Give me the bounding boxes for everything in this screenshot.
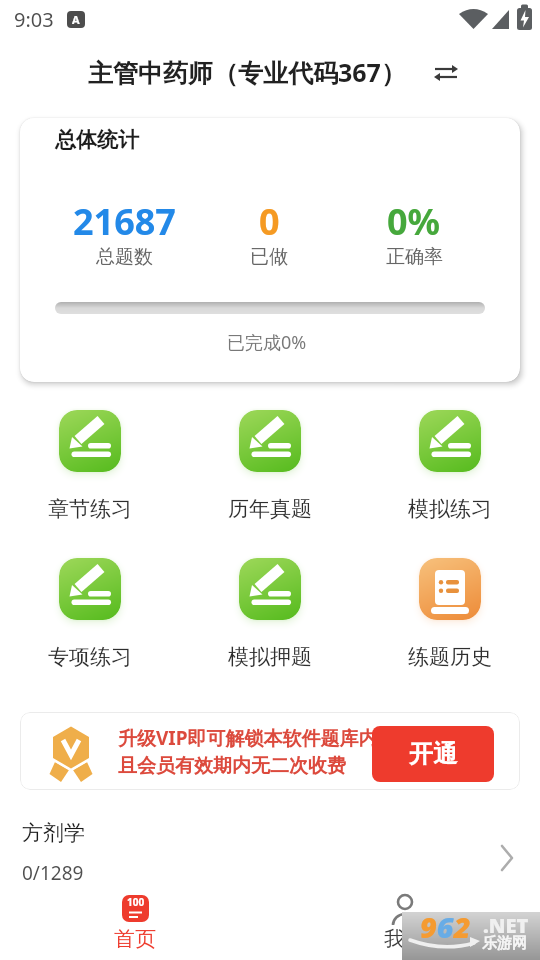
staticText: 962	[420, 907, 471, 946]
button[interactable]: 练题历史	[388, 558, 512, 670]
staticText: 0%	[387, 197, 441, 246]
staticText: 总题数	[96, 245, 153, 269]
staticText: 正确率	[386, 245, 443, 269]
button[interactable]: 模拟押题	[208, 558, 332, 670]
staticText: 且会员有效期内无二次收费	[118, 754, 346, 778]
staticText: 历年真题	[228, 496, 312, 522]
staticText: .NET	[483, 912, 529, 939]
button[interactable]	[0, 808, 540, 890]
button[interactable]: 我的	[365, 888, 445, 960]
staticText: 乐游网	[482, 934, 527, 953]
staticText: 21687	[73, 197, 176, 246]
staticText: 开通	[409, 739, 457, 769]
button[interactable]: 历年真题	[208, 410, 332, 522]
button[interactable]: 100	[95, 888, 175, 960]
button[interactable]: 开通	[372, 726, 494, 782]
staticText: 已做	[250, 245, 288, 269]
staticText: 总体统计	[55, 127, 139, 153]
button[interactable]: 章节练习	[28, 410, 152, 522]
staticText: 章节练习	[48, 496, 132, 522]
button[interactable]: 模拟练习	[388, 410, 512, 522]
staticText: A	[72, 12, 80, 27]
staticText: 专项练习	[48, 644, 132, 670]
button[interactable]	[20, 712, 520, 790]
staticText: 模拟练习	[408, 496, 492, 522]
staticText: 主管中药师（专业代码367）	[88, 55, 406, 89]
staticText: 已完成0%	[227, 330, 307, 355]
staticText: 练题历史	[408, 644, 492, 670]
staticText: 升级VIP即可解锁本软件题库内容	[118, 725, 397, 751]
button[interactable]	[70, 48, 470, 96]
staticText: 100	[127, 895, 145, 909]
staticText: 0	[259, 197, 280, 246]
staticText: 方剂学	[22, 820, 85, 846]
staticText: 0/1289	[22, 860, 84, 886]
staticText: 9:03	[14, 6, 54, 33]
staticText: 模拟押题	[228, 644, 312, 670]
button[interactable]: 专项练习	[28, 558, 152, 670]
staticText: 首页	[114, 926, 156, 952]
staticText: 我的	[384, 926, 426, 952]
